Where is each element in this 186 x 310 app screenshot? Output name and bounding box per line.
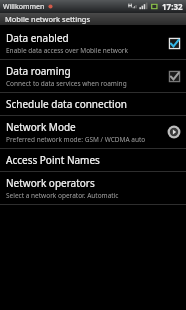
button[interactable]: Network operators xyxy=(0,172,186,204)
button[interactable]: Data roaming xyxy=(0,60,186,92)
staticText: Select a network operator. Automatic xyxy=(6,191,119,200)
staticText: Network operators xyxy=(6,176,95,190)
staticText: Access Point Names xyxy=(6,153,100,167)
staticText: 17:32 xyxy=(162,1,183,12)
staticText: Data enabled xyxy=(6,31,69,45)
staticText: Connect to data services when roaming xyxy=(6,79,127,88)
other: Data roaming toggle xyxy=(168,70,181,83)
staticText: Enable data access over Mobile network xyxy=(6,46,129,55)
button[interactable]: Access Point Names xyxy=(0,149,186,171)
button[interactable]: Data enabled xyxy=(0,27,186,59)
other: Network mode loading xyxy=(167,125,181,139)
staticText: Preferred network mode: GSM / WCDMA auto xyxy=(6,135,146,144)
button[interactable]: Network Mode xyxy=(0,116,186,148)
staticText: Schedule data connection xyxy=(6,97,127,111)
staticText: Network Mode xyxy=(6,120,76,134)
staticText: Mobile network settings xyxy=(5,14,91,24)
button[interactable]: Schedule data connection xyxy=(0,93,186,115)
staticText: Willkommen xyxy=(3,2,45,12)
staticText: Data roaming xyxy=(6,64,71,78)
other: Data enabled toggle xyxy=(168,37,181,50)
